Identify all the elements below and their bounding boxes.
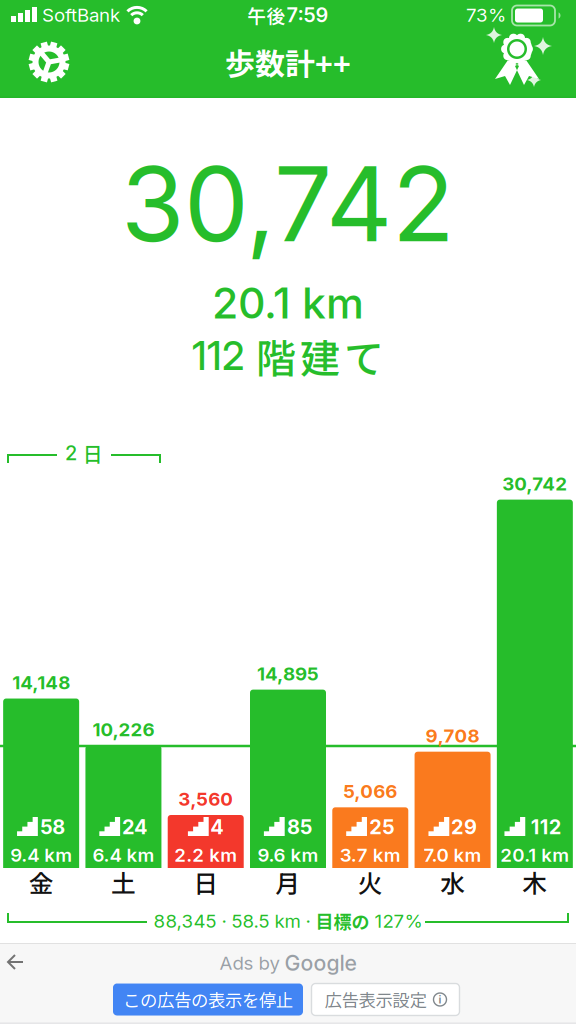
staticText: 金 (29, 864, 54, 900)
staticText: 5,066 (343, 780, 397, 802)
staticText: 20.1 km (212, 278, 364, 328)
staticText: 6.4 km (92, 844, 154, 866)
staticText: 土 (111, 864, 136, 900)
staticText: て (344, 327, 384, 385)
staticText: 9.6 km (257, 844, 318, 866)
staticText: 2.2 km (174, 844, 237, 866)
button[interactable]: Back (6, 954, 26, 970)
staticText: 歩数計++ (225, 40, 351, 84)
staticText: 112 (192, 333, 244, 379)
staticText: SoftBank (42, 4, 120, 26)
staticText: 2 (65, 441, 77, 465)
staticText: 4 (210, 815, 224, 839)
staticText: 9,708 (426, 725, 480, 747)
staticText: 25 (369, 815, 394, 839)
staticText: 20.1 km (500, 844, 569, 866)
staticText: Google (284, 950, 356, 976)
staticText: 24 (122, 815, 148, 839)
staticText: 30,742 (121, 143, 455, 264)
staticText: 午後 (247, 1, 285, 28)
button[interactable]: この広告の表示を停止 (113, 983, 303, 1015)
staticText: 階 (256, 327, 296, 385)
staticText: 日 (193, 864, 218, 900)
staticText: 58 (40, 815, 65, 839)
staticText: 3,560 (178, 788, 233, 810)
staticText: 7:59 (286, 3, 328, 27)
staticText: 月 (275, 864, 300, 900)
staticText: 30,742 (502, 473, 567, 495)
staticText: 14,148 (12, 671, 70, 693)
staticText: 木 (522, 864, 547, 900)
staticText: 73% (466, 4, 506, 26)
button[interactable]: 広告表示設定 (311, 983, 459, 1015)
staticText: 29 (451, 815, 477, 839)
staticText: 14,895 (257, 663, 319, 685)
staticText: 85 (287, 815, 312, 839)
staticText: Ads by (219, 952, 279, 974)
staticText: 火 (358, 864, 383, 900)
staticText: 広告表示設定 (324, 987, 426, 1012)
button[interactable]: Settings (21, 34, 77, 90)
staticText: 建 (300, 327, 340, 385)
staticText: 水 (440, 864, 465, 900)
staticText: 3.7 km (340, 844, 401, 866)
staticText: 88,345 · 58.5 km · (153, 910, 315, 932)
staticText: 10,226 (92, 718, 154, 740)
staticText: 127% (369, 910, 422, 932)
staticText: この広告の表示を停止 (123, 987, 293, 1012)
staticText: 9.4 km (10, 844, 72, 866)
staticText: i (438, 993, 441, 1006)
staticText: 目標の (315, 908, 369, 934)
staticText: 112 (531, 815, 562, 839)
staticText: 日 (83, 438, 103, 467)
staticText: 7.0 km (424, 844, 482, 866)
button[interactable]: Achievements (477, 25, 557, 95)
